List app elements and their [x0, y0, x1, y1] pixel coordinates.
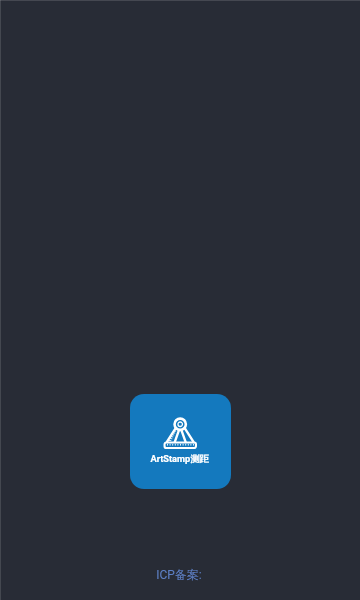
button[interactable]: ICP备案: — [156, 567, 202, 582]
button[interactable]: ArtStamp 测距 — [130, 394, 231, 489]
staticText: ArtStamp测距 — [150, 453, 209, 465]
